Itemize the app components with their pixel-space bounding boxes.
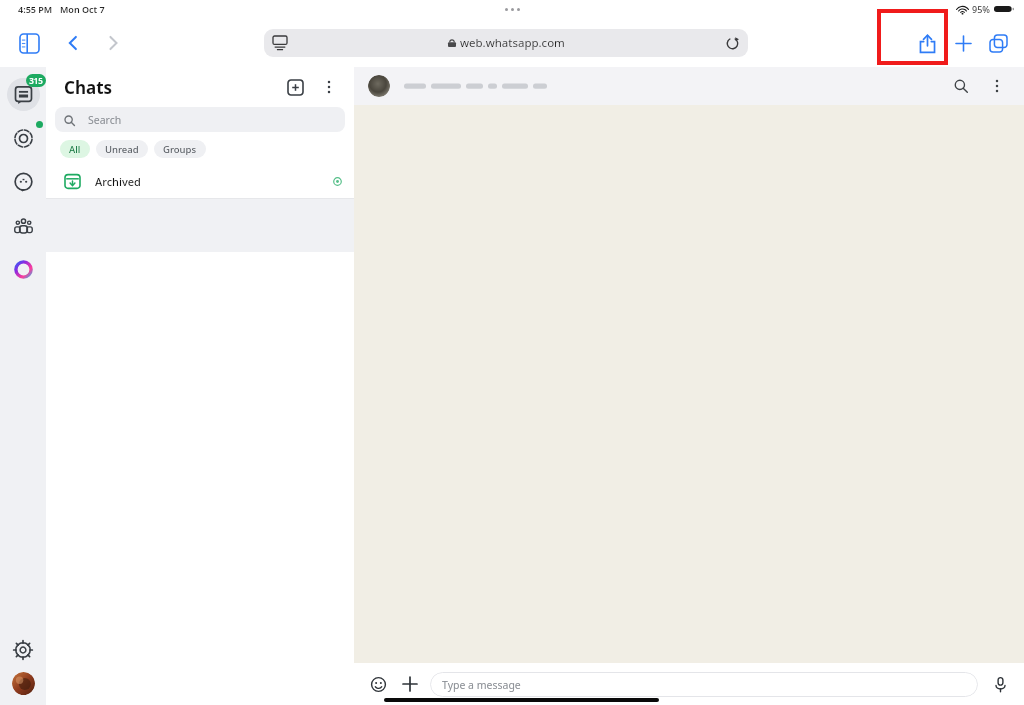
button[interactable]: Page settings	[264, 29, 748, 57]
staticText: Mon Oct 7	[60, 3, 105, 15]
button[interactable]: Profile	[12, 672, 35, 695]
staticText: Chats	[64, 76, 113, 99]
button[interactable]: Meta AI	[5, 251, 41, 287]
button[interactable]: Type a message	[430, 672, 978, 697]
button[interactable]: Show sidebar	[12, 26, 46, 60]
button[interactable]	[368, 75, 532, 97]
staticText: All	[69, 143, 81, 156]
button[interactable]: Search in chat	[946, 71, 976, 101]
button[interactable]: All	[60, 140, 90, 158]
staticText: Unread	[105, 143, 139, 156]
staticText: Groups	[163, 143, 197, 156]
staticText: Search	[88, 113, 122, 127]
button[interactable]: Forward	[96, 26, 130, 60]
button[interactable]: New tab	[946, 26, 980, 60]
button[interactable]: Voice message	[986, 670, 1014, 698]
button[interactable]: Settings	[5, 632, 41, 668]
staticText: Archived	[95, 174, 141, 189]
button[interactable]: Unread	[96, 140, 148, 158]
other: Page settings	[273, 36, 287, 50]
button[interactable]: Communities	[4, 207, 42, 245]
staticText: web.whatsapp.com	[460, 35, 565, 51]
button[interactable]: Groups	[154, 140, 206, 158]
staticText: 95%	[972, 3, 990, 15]
button[interactable]: Reload	[726, 37, 739, 50]
button[interactable]: Back	[56, 26, 90, 60]
staticText: Type a message	[442, 678, 521, 692]
button[interactable]: Share	[908, 24, 946, 62]
button[interactable]: Menu	[314, 72, 344, 102]
button[interactable]: Search	[55, 107, 345, 132]
button[interactable]: Attach	[396, 670, 424, 698]
staticText: 4:55 PM	[18, 3, 53, 15]
button[interactable]: New chat	[280, 72, 310, 102]
button[interactable]: Channels	[4, 163, 42, 201]
button[interactable]: Chat menu	[982, 71, 1012, 101]
button[interactable]: Tabs	[980, 25, 1016, 61]
button[interactable]: Emoji	[364, 670, 392, 698]
button[interactable]: Archived	[46, 166, 354, 196]
button[interactable]: Status	[4, 119, 42, 157]
staticText: 315	[29, 75, 43, 86]
button[interactable]: Chats	[4, 75, 42, 113]
